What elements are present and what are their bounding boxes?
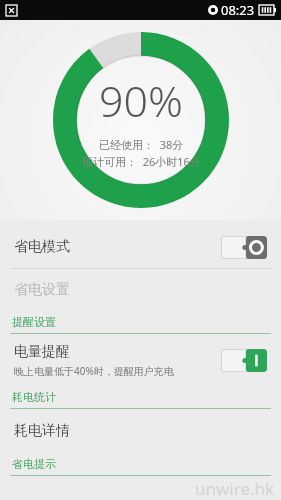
- button[interactable]: 电量提醒: [0, 334, 281, 386]
- staticText: 90%: [99, 71, 184, 130]
- button[interactable]: On: [221, 349, 267, 372]
- staticText: 省电模式: [14, 238, 70, 256]
- button[interactable]: Off: [221, 236, 267, 259]
- staticText: 耗电详情: [14, 422, 70, 440]
- button[interactable]: 耗电详情: [0, 409, 281, 453]
- staticText: 已经使用： 38分: [99, 137, 184, 152]
- staticText: 预计可用： 26小时16分: [82, 154, 201, 169]
- staticText: 耗电统计: [12, 390, 56, 404]
- staticText: 提醒设置: [12, 315, 56, 329]
- staticText: 省电设置: [14, 281, 70, 299]
- staticText: 省电提示: [12, 457, 56, 471]
- staticText: unwire.hk: [195, 477, 275, 500]
- button[interactable]: 省电设置: [0, 269, 281, 311]
- button[interactable]: 省电模式: [0, 226, 281, 268]
- staticText: 08:23: [221, 1, 255, 19]
- staticText: 晚上电量低于40%时，提醒用户充电: [14, 364, 174, 378]
- staticText: 电量提醒: [14, 343, 70, 361]
